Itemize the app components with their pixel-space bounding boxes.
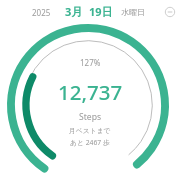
staticText: 2025 (32, 7, 51, 18)
staticText: 月ベストまで (69, 126, 111, 135)
staticText: Steps (79, 111, 102, 123)
staticText: 3月 (65, 4, 83, 19)
staticText: 19日 (89, 4, 113, 19)
staticText: 水曜日 (121, 7, 145, 17)
staticText: 12,737 (58, 78, 123, 106)
staticText: あと 2467 歩 (70, 138, 110, 147)
button[interactable]: Options (162, 4, 178, 20)
staticText: 127% (80, 57, 101, 68)
